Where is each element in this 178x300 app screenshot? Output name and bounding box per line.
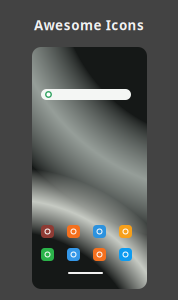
button[interactable]: App [119, 248, 132, 261]
button[interactable]: App [41, 225, 54, 238]
button[interactable]: App [93, 248, 106, 261]
button[interactable]: App [67, 248, 80, 261]
button[interactable]: App [93, 225, 106, 238]
button[interactable]: App [41, 248, 54, 261]
button[interactable]: App [67, 225, 80, 238]
button[interactable]: App [119, 225, 132, 238]
staticText: Awesome Icons [34, 16, 144, 34]
